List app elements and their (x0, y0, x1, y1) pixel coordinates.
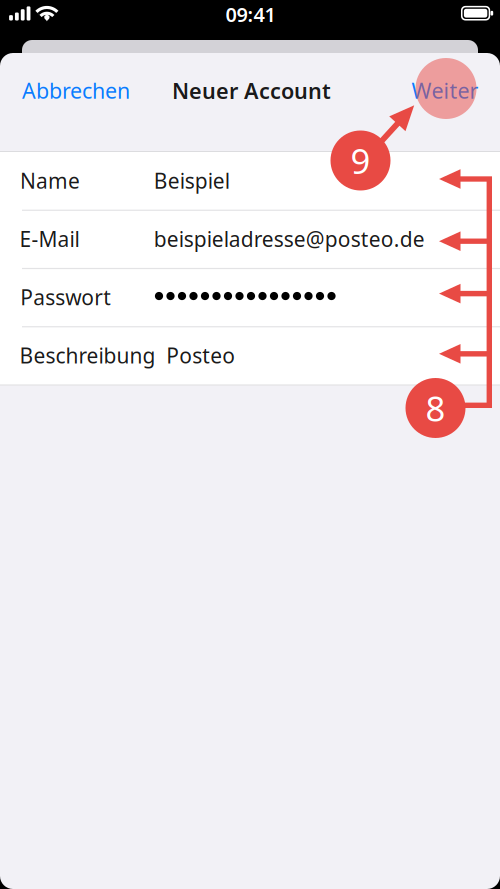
staticText: Passwort (20, 283, 111, 311)
staticText: Beschreibung (19, 341, 155, 369)
staticText: Weiter (411, 76, 478, 105)
staticText: Name (20, 167, 80, 194)
button[interactable]: Weiter (400, 67, 490, 113)
staticText: E-Mail (19, 225, 79, 253)
staticText: Abbrechen (22, 76, 130, 105)
staticText: beispieladresse@posteo.de (154, 225, 425, 253)
button[interactable]: Name (0, 152, 500, 210)
staticText: 8 (425, 385, 445, 431)
button[interactable]: Abbrechen (11, 67, 141, 113)
staticText: Neuer Account (172, 76, 331, 105)
staticText: Posteo (166, 341, 235, 369)
button[interactable]: E-Mail (0, 210, 500, 268)
staticText: 9 (350, 137, 370, 183)
staticText: 09:41 (225, 1, 275, 27)
staticText: Beispiel (154, 167, 230, 194)
button[interactable]: Passwort (0, 268, 500, 327)
button[interactable]: Beschreibung (0, 327, 500, 385)
